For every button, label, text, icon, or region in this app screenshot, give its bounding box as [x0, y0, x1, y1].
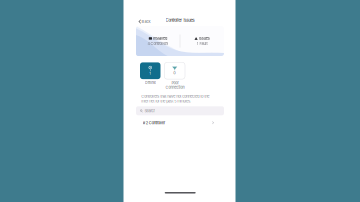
staticText: Back [141, 19, 150, 24]
staticText: Issues [199, 36, 210, 41]
staticText: 1 [149, 71, 151, 76]
staticText: Controller Issues [165, 18, 194, 23]
button[interactable]: Offline controllers [140, 62, 160, 79]
staticText: Installed [153, 36, 167, 41]
staticText: 0 [173, 70, 176, 75]
staticText: Controllers that have not connected to t… [141, 94, 209, 103]
button[interactable]: Back [137, 17, 152, 26]
staticText: #2 Controller [143, 120, 166, 125]
staticText: 4 Controllers [147, 41, 168, 46]
button[interactable]: Poor connection controllers [164, 62, 185, 79]
staticText: Offline [145, 80, 156, 85]
staticText: 1 Fault [197, 41, 208, 46]
button[interactable]: Search [136, 106, 224, 115]
staticText: Poor Connection [165, 81, 184, 90]
button[interactable]: #2 Controller [136, 118, 224, 127]
staticText: Search [144, 108, 155, 113]
